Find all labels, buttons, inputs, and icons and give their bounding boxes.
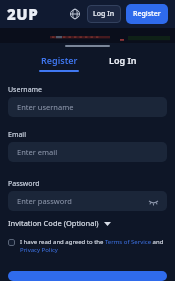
staticText: Enter username	[17, 102, 74, 112]
button[interactable]	[8, 239, 15, 246]
staticText: Enter email	[17, 147, 58, 157]
staticText: Log In	[109, 54, 137, 66]
button[interactable]: Register	[39, 54, 79, 72]
button[interactable]: Log In	[109, 54, 137, 66]
staticText: 2UP	[7, 4, 39, 24]
button[interactable]: Invitation Code (Optional)	[8, 218, 111, 228]
button[interactable]	[8, 271, 167, 281]
button[interactable]: Register	[126, 4, 168, 24]
staticText: I have read and agreed to the Terms of S…	[20, 238, 167, 254]
button[interactable]: Enter password	[8, 191, 167, 211]
staticText: Invitation Code (Optional)	[8, 218, 99, 228]
staticText: Email	[8, 130, 26, 140]
button[interactable]: Enter email	[8, 142, 167, 162]
button[interactable]: Log In	[87, 5, 121, 23]
staticText: Enter password	[17, 196, 72, 206]
staticText: Username	[8, 85, 43, 95]
staticText: Register	[133, 9, 161, 19]
staticText: Log In	[93, 9, 115, 19]
button[interactable]: Enter username	[8, 97, 167, 117]
staticText: Password	[8, 179, 40, 189]
staticText: Register	[41, 54, 78, 66]
